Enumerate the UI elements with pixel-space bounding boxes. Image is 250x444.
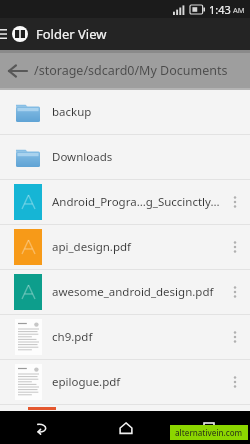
staticText: ch9.pdf — [52, 329, 220, 345]
button[interactable]: Android_Progra…g_Succinctly.pdf — [0, 180, 250, 224]
button[interactable]: api_design.pdf — [0, 225, 250, 269]
staticText: backup — [52, 104, 220, 120]
button[interactable]: More options — [220, 360, 250, 404]
button[interactable]: Home — [84, 411, 167, 444]
staticText: awesome_android_design.pdf — [52, 284, 220, 300]
button[interactable]: Downloads — [0, 135, 250, 179]
button[interactable]: Back — [0, 411, 84, 444]
staticText: Android_Progra…g_Succinctly.pdf — [52, 194, 220, 210]
button[interactable]: Open navigation drawer — [0, 18, 12, 50]
button[interactable]: More options — [220, 315, 250, 359]
button[interactable]: backup — [0, 90, 250, 134]
button[interactable]: awesome_android_design.pdf — [0, 270, 250, 314]
staticText: Downloads — [52, 149, 220, 165]
staticText: api_design.pdf — [52, 239, 220, 255]
staticText: 1:43 — [209, 2, 231, 17]
staticText: /storage/sdcard0/My Documents — [34, 62, 228, 79]
staticText: epilogue.pdf — [52, 374, 220, 390]
button[interactable]: More options — [220, 180, 250, 224]
button[interactable]: Navigate up — [0, 54, 34, 88]
button[interactable]: More options — [220, 270, 250, 314]
button[interactable]: Recent apps — [167, 411, 250, 444]
staticText: AM — [233, 5, 245, 15]
button[interactable]: epilogue.pdf — [0, 360, 250, 404]
staticText: alternativein.com — [175, 427, 243, 438]
button[interactable]: More options — [220, 225, 250, 269]
button[interactable]: ch9.pdf — [0, 315, 250, 359]
staticText: Folder View — [36, 25, 107, 43]
